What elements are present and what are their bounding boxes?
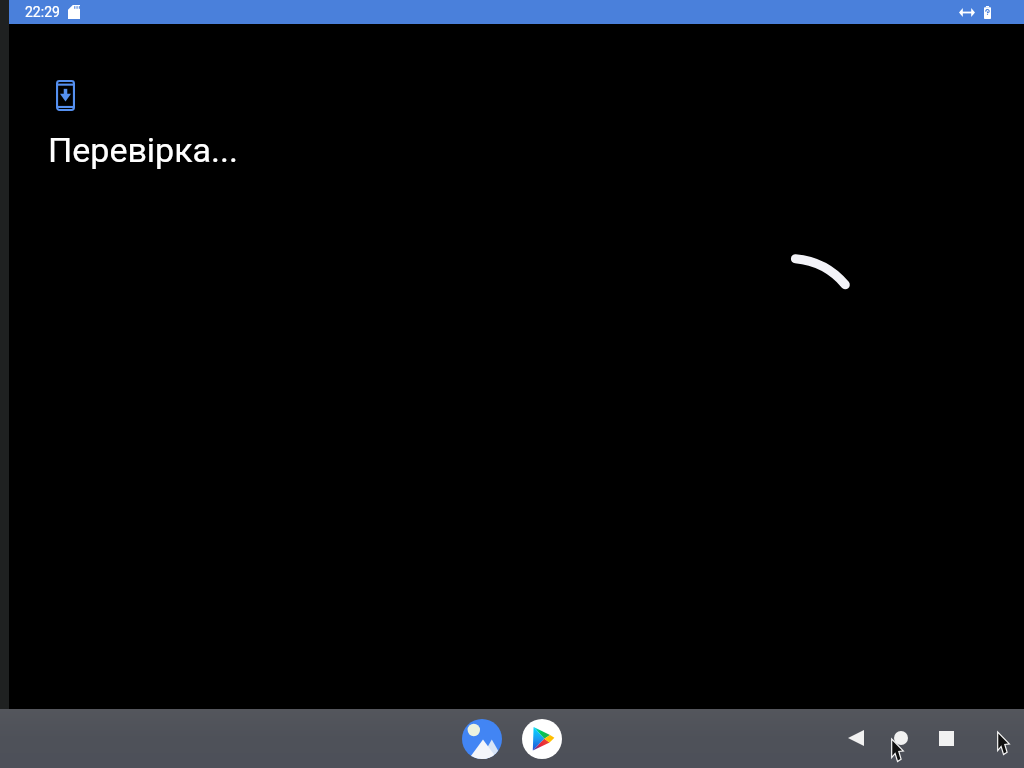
button[interactable]: Home xyxy=(883,720,919,756)
button[interactable]: Play Store xyxy=(522,719,562,759)
button[interactable]: Back xyxy=(838,720,874,756)
button[interactable]: Recent apps xyxy=(928,720,964,756)
button[interactable]: Photos xyxy=(462,719,502,759)
staticText: Перевірка... xyxy=(48,130,238,170)
staticText: 22:29 xyxy=(25,4,60,20)
